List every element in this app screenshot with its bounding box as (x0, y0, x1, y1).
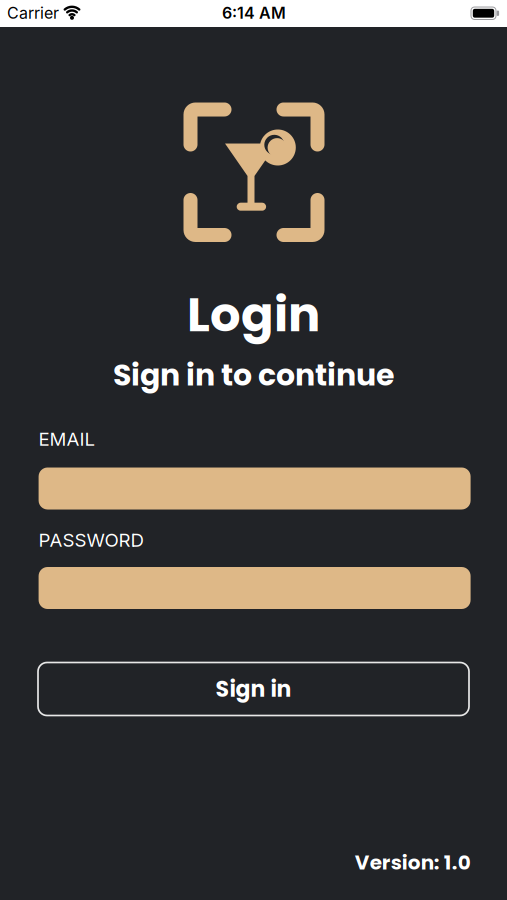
staticText: EMAIL (39, 428, 96, 450)
staticText: PASSWORD (39, 529, 144, 551)
staticText: Login (187, 281, 320, 348)
staticText: Sign in (215, 674, 291, 704)
staticText: 6:14 AM (222, 3, 286, 23)
staticText: Version: 1.0 (355, 848, 471, 876)
button[interactable]: Sign in (38, 662, 469, 715)
staticText: Sign in to continue (113, 354, 394, 396)
button[interactable]: Email (39, 467, 471, 509)
button[interactable]: Password (39, 567, 471, 609)
staticText: Carrier (7, 3, 59, 23)
